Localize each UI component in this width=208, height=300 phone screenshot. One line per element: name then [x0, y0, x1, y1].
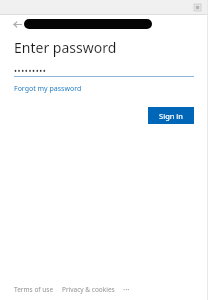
staticText: Enter password [14, 38, 117, 57]
button[interactable]: Account [24, 19, 152, 29]
staticText: ••••••••• [14, 65, 47, 76]
staticText: Terms of use [14, 285, 54, 294]
button[interactable]: Back [13, 20, 22, 29]
button[interactable]: More options [123, 284, 130, 295]
button[interactable]: ••••••••• [14, 65, 194, 76]
button[interactable]: Close [193, 3, 202, 12]
staticText: Forgot my password [14, 84, 82, 94]
button[interactable]: Sign in [148, 107, 194, 124]
button[interactable]: Forgot my password [14, 84, 82, 94]
staticText: Sign in [159, 111, 183, 121]
button[interactable]: Privacy & cookies [62, 285, 115, 294]
button[interactable]: Terms of use [14, 285, 54, 294]
staticText: ··· [123, 284, 130, 295]
staticText: Privacy & cookies [62, 285, 115, 294]
